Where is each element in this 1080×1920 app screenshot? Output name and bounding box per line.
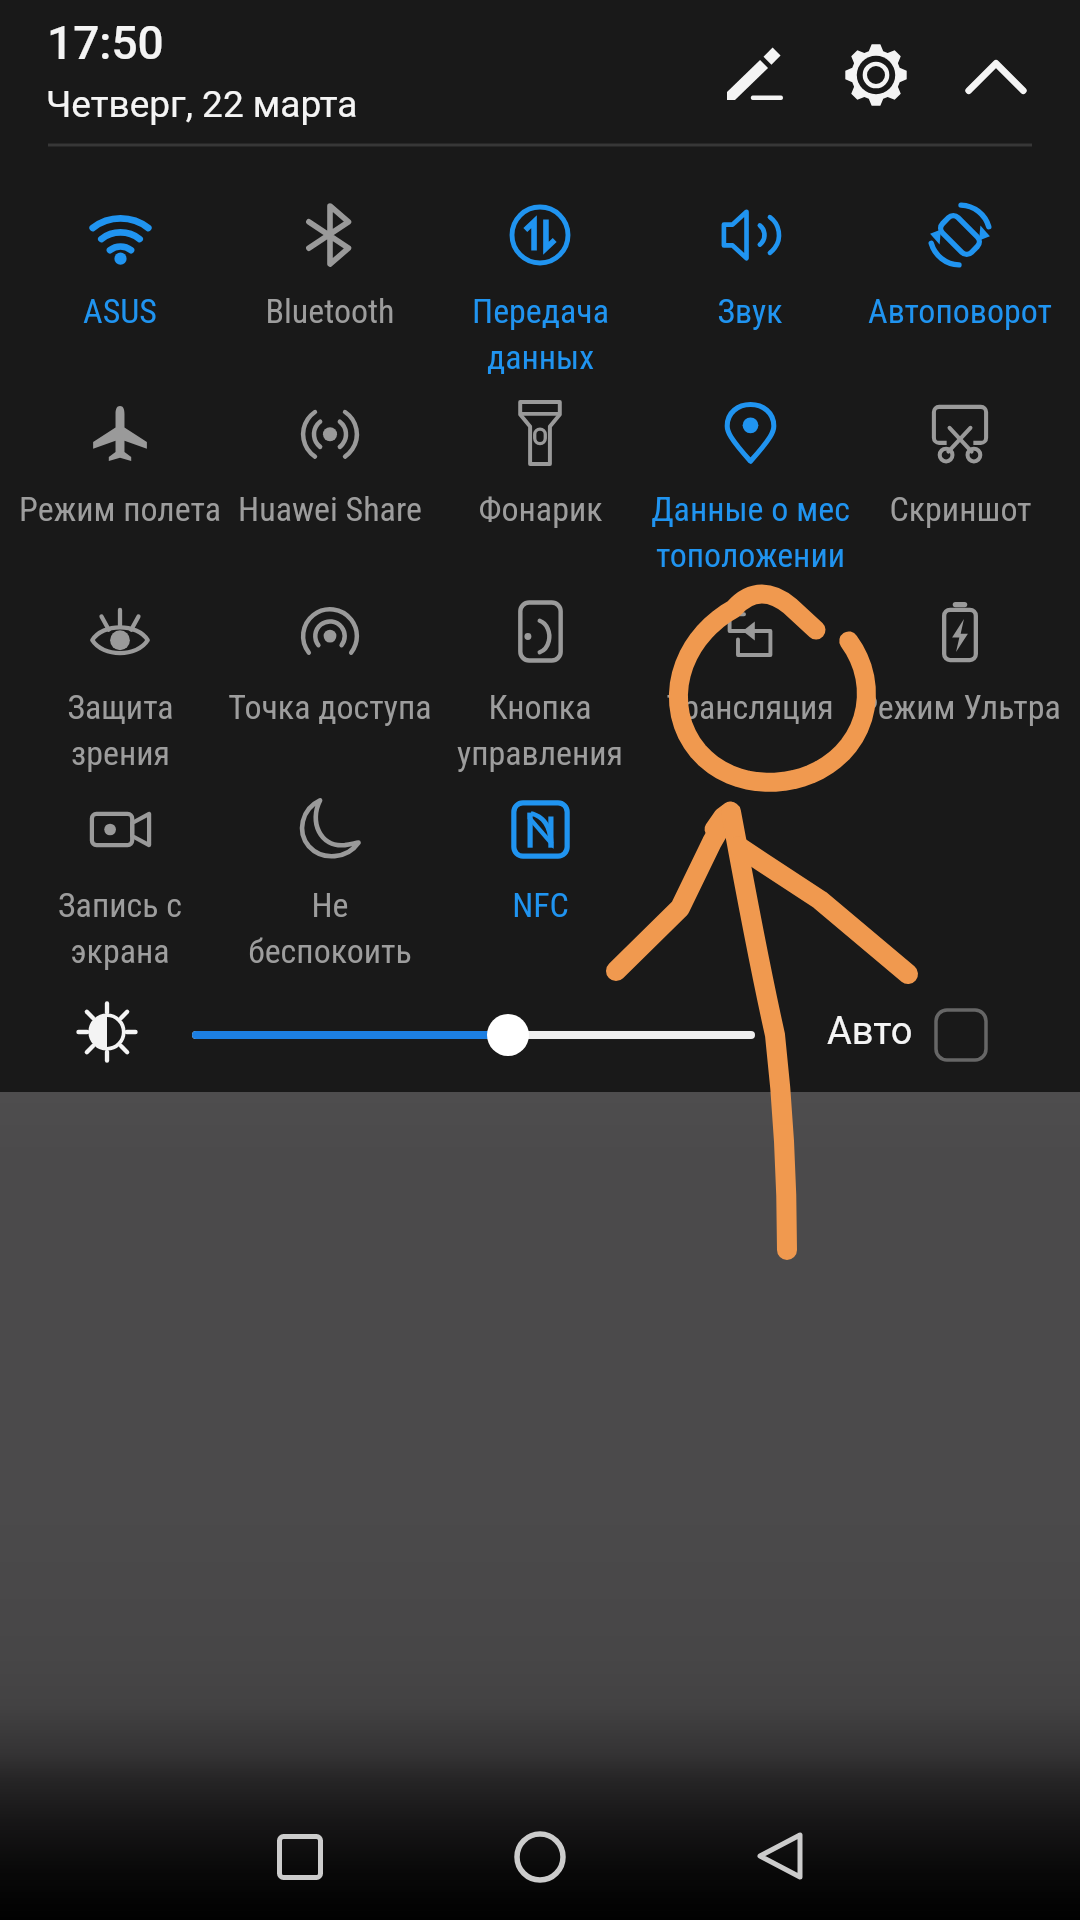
button[interactable]: Brightness [184,1005,764,1065]
button[interactable]: Фонарик [435,371,645,561]
staticText: Скриншот [889,489,1032,529]
staticText: Авто [827,1009,913,1054]
staticText: Звук [717,291,783,331]
staticText: Точка доступа [228,687,432,727]
button[interactable]: Звук [645,173,855,363]
button[interactable]: Передача данных [435,173,645,363]
staticText: Не беспокоить [248,885,412,972]
staticText: Huawei Share [238,489,422,529]
staticText: Данные о мес тоположении [651,489,850,576]
button[interactable]: Auto brightness [934,1008,988,1062]
staticText: Запись с экрана [58,885,182,972]
button[interactable]: Settings [845,44,907,106]
button[interactable]: Home [514,1831,566,1883]
staticText: NFC [512,885,569,925]
button[interactable]: NFC [435,767,645,957]
staticText: Четверг, 22 марта [46,83,358,126]
staticText: Передача данных [472,291,609,378]
staticText: Bluetooth [265,291,395,331]
staticText: Трансляция [666,687,834,727]
button[interactable]: Запись с экрана [15,767,225,957]
button[interactable]: Защита зрения [15,569,225,759]
button[interactable]: Back [757,1832,804,1879]
staticText: 17:50 [47,16,164,70]
staticText: Фонарик [478,489,603,529]
button[interactable]: Автоповорот [855,173,1065,363]
button[interactable]: Edit quick settings [727,43,784,100]
button[interactable]: Bluetooth [225,173,435,363]
button[interactable]: Режим полета [15,371,225,561]
button[interactable]: Трансляция [645,569,855,759]
button[interactable]: Скриншот [855,371,1065,561]
staticText: Автоповорот [868,291,1052,331]
staticText: Режим Ультра [859,687,1061,727]
button[interactable]: Recent apps [277,1834,323,1880]
button[interactable]: Huawei Share [225,371,435,561]
staticText: Защита зрения [67,687,174,774]
button[interactable]: Точка доступа [225,569,435,759]
staticText: Режим полета [19,489,221,529]
button[interactable]: Режим Ультра [855,569,1065,759]
staticText: ASUS [83,291,157,331]
button[interactable]: ASUS [15,173,225,363]
button[interactable]: Кнопка управления [435,569,645,759]
button[interactable]: Данные о мес тоположении [645,371,855,561]
button[interactable]: Не беспокоить [225,767,435,957]
staticText: Кнопка управления [457,687,623,774]
button[interactable]: Collapse panel [965,46,1027,108]
